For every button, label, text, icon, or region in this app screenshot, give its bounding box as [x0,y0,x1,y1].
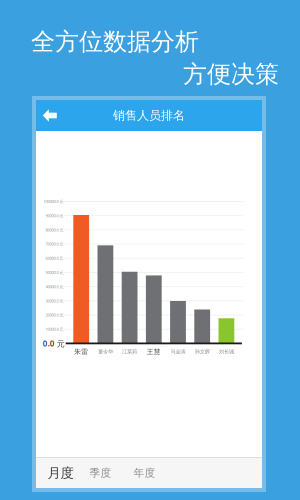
staticText: 月度 [48,465,74,481]
staticText: 方便决策 [183,59,279,89]
staticText: 朱雷 [74,348,88,356]
staticText: 王慧 [147,348,161,356]
staticText: 全方位数据分析 [31,27,199,56]
staticText: 0.0 元 [43,338,65,349]
staticText: 30000.0 元 [45,298,63,303]
staticText: 50000.0 元 [45,270,63,275]
staticText: 江莱莉 [122,348,137,355]
staticText: 80000.0 元 [45,227,63,232]
staticText: 季度 [90,466,112,479]
staticText: 70000.0 元 [45,241,63,247]
staticText: 10000.0 元 [45,327,63,332]
staticText: 20000.0 元 [45,312,63,318]
staticText: 年度 [134,466,156,479]
button[interactable]: 月度 [48,457,74,489]
staticText: 马金涛 [170,348,185,355]
button[interactable]: 季度 [74,457,112,488]
button[interactable]: 年度 [112,457,156,488]
button[interactable]: Back [36,100,66,131]
staticText: 刘长城 [219,348,234,355]
staticText: 40000.0 元 [45,284,63,289]
staticText: 60000.0 元 [45,256,63,261]
staticText: 董令华 [98,348,113,355]
staticText: 孙文辉 [195,348,210,355]
staticText: 90000.0 元 [45,213,63,218]
staticText: 100000.0 元 [43,199,63,204]
staticText: 销售人员排名 [113,108,185,123]
